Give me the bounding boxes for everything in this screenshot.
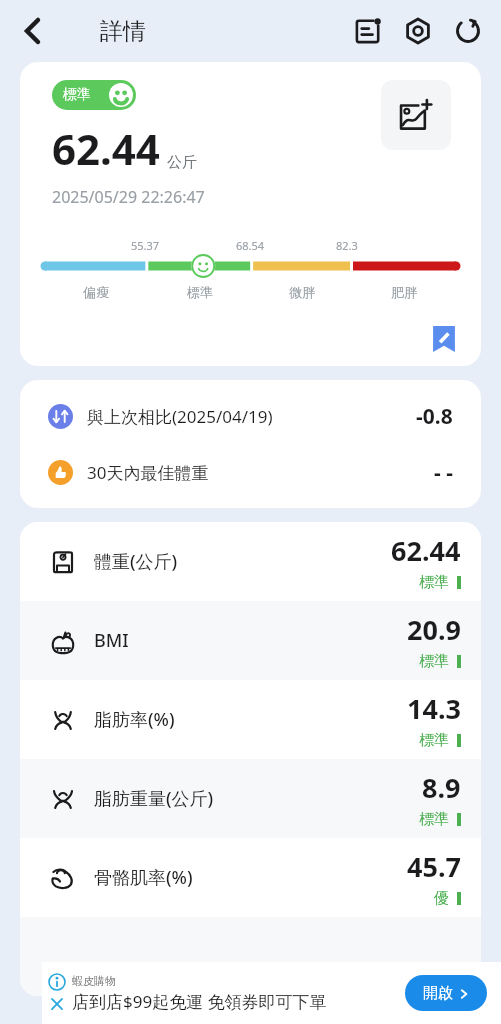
staticText: 公斤: [167, 153, 197, 172]
staticText: 詳情: [100, 17, 146, 46]
button[interactable]: 開啟: [405, 975, 487, 1011]
button[interactable]: Refresh: [449, 12, 487, 50]
staticText: 店到店$99起免運 免領券即可下單: [72, 990, 327, 1013]
button[interactable]: Add photo: [381, 80, 451, 150]
staticText: 偏瘦: [83, 284, 109, 300]
staticText: 脂肪重量(公斤): [94, 786, 214, 811]
staticText: 30天內最佳體重: [87, 461, 209, 484]
staticText: 20.9: [407, 611, 461, 648]
button[interactable]: 骨骼肌率(%): [20, 838, 481, 917]
staticText: 8.9: [422, 769, 461, 806]
staticText: 45.7: [407, 848, 461, 885]
staticText: 2025/05/29 22:26:47: [52, 186, 205, 208]
button[interactable]: Notes: [349, 12, 387, 50]
button[interactable]: 體重(公斤): [20, 522, 481, 601]
staticText: 62.44: [52, 120, 160, 177]
staticText: -0.8: [416, 402, 453, 431]
staticText: 脂肪率(%): [94, 707, 175, 732]
staticText: 微胖: [289, 284, 315, 300]
button[interactable]: Ad info: [48, 973, 66, 991]
staticText: 骨骼肌率(%): [94, 865, 193, 890]
staticText: BMI: [94, 628, 129, 653]
staticText: 標準: [419, 652, 449, 671]
staticText: 82.3: [336, 238, 358, 253]
button[interactable]: Back: [10, 9, 54, 53]
staticText: 開啟: [423, 984, 453, 1003]
staticText: 14.3: [407, 690, 461, 727]
staticText: 標準: [419, 810, 449, 829]
button[interactable]: BMI: [20, 601, 481, 680]
button[interactable]: [20, 917, 481, 996]
button[interactable]: 脂肪重量(公斤): [20, 759, 481, 838]
button[interactable]: Settings: [399, 12, 437, 50]
staticText: 標準: [187, 284, 213, 300]
button[interactable]: 與上次相比(2025/04/19): [20, 388, 481, 444]
button[interactable]: 30天內最佳體重: [20, 444, 481, 500]
staticText: 55.37: [131, 238, 160, 253]
button[interactable]: Edit: [431, 326, 457, 352]
staticText: 與上次相比(2025/04/19): [87, 405, 273, 428]
staticText: 62.44: [391, 532, 461, 569]
staticText: 標準: [419, 731, 449, 750]
button[interactable]: Close ad: [48, 995, 66, 1013]
button[interactable]: Ad info: [42, 962, 501, 1024]
staticText: 優: [434, 889, 449, 908]
staticText: 68.54: [236, 238, 265, 253]
staticText: - -: [434, 458, 453, 487]
button[interactable]: 標準: [52, 80, 136, 110]
staticText: 標準: [419, 573, 449, 592]
staticText: 肥胖: [391, 284, 417, 300]
staticText: 體重(公斤): [94, 549, 178, 574]
staticText: 標準: [63, 86, 91, 104]
button[interactable]: 脂肪率(%): [20, 680, 481, 759]
staticText: 蝦皮購物: [72, 974, 116, 988]
